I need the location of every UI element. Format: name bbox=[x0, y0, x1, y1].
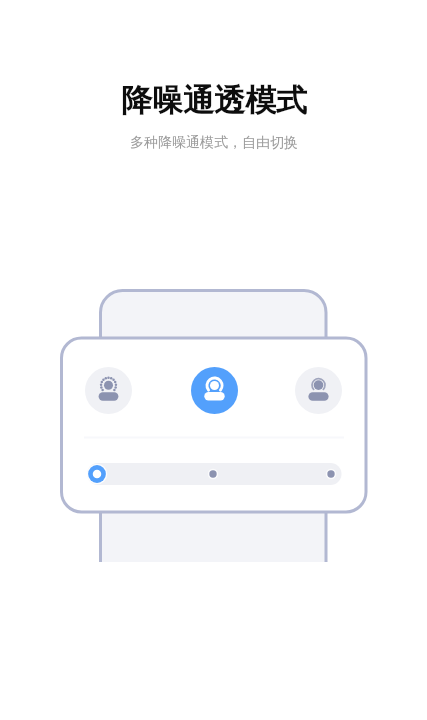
button[interactable]: Level 1 selected bbox=[86, 463, 108, 485]
staticText: 降噪通透模式 bbox=[121, 81, 307, 120]
button[interactable]: Level 3 bbox=[323, 466, 339, 482]
button[interactable]: Transparency mode bbox=[85, 367, 132, 414]
button[interactable]: Level 2 bbox=[205, 466, 221, 482]
staticText: 多种降噪通模式，自由切换 bbox=[130, 134, 298, 152]
button[interactable]: Noise cancellation off bbox=[191, 367, 238, 414]
button[interactable]: Noise cancelling mode bbox=[295, 367, 342, 414]
